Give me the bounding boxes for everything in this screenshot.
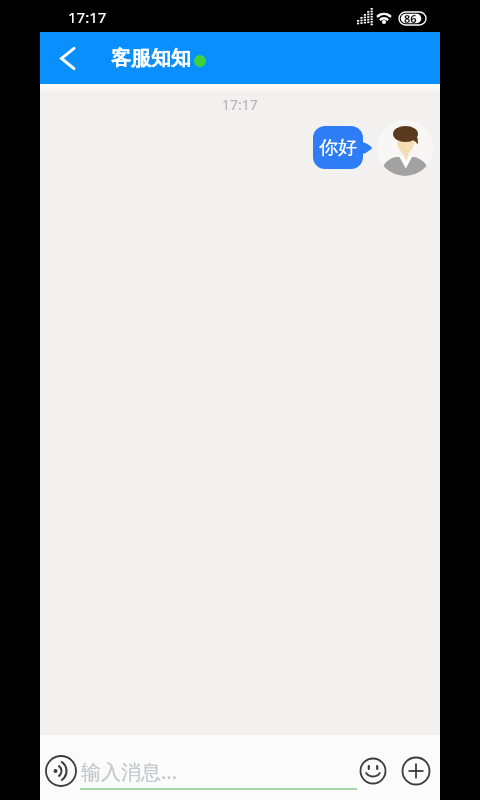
button[interactable] [402,757,430,785]
staticText: 86 [404,11,417,26]
staticText: 客服知知 [111,46,191,71]
button[interactable]: 你好 [313,126,363,169]
button[interactable] [360,758,386,784]
staticText: 输入消息... [81,758,178,785]
button[interactable]: 输入消息... [81,753,357,789]
button[interactable] [50,37,92,79]
staticText: 你好 [319,136,357,160]
staticText: 17:17 [222,95,258,114]
button[interactable] [45,755,77,787]
staticText: 17:17 [68,7,107,27]
button[interactable] [377,120,433,176]
